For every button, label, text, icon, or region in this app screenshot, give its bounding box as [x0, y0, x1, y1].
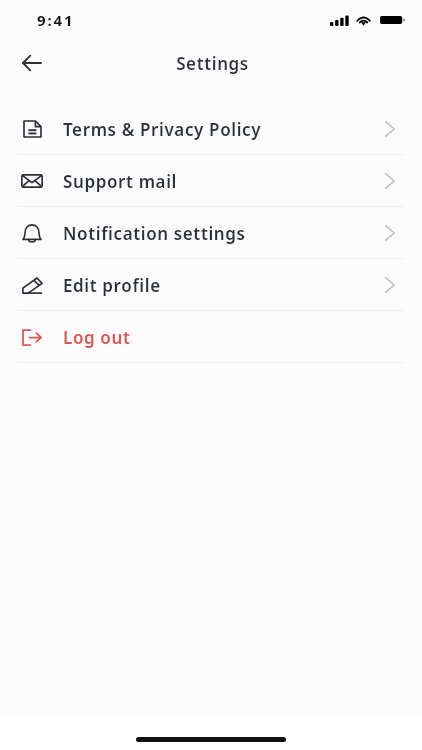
- staticText: Log out: [63, 326, 131, 349]
- staticText: Terms & Privacy Policy: [63, 118, 262, 141]
- staticText: Settings: [176, 52, 249, 75]
- button[interactable]: Notification settings: [0, 207, 422, 259]
- button[interactable]: Edit profile: [0, 259, 422, 311]
- button[interactable]: Back: [14, 45, 50, 81]
- staticText: Edit profile: [63, 274, 161, 297]
- button[interactable]: Log out: [0, 311, 422, 363]
- button[interactable]: Terms & Privacy Policy: [0, 103, 422, 155]
- staticText: 9:41: [37, 10, 75, 30]
- staticText: Support mail: [63, 170, 177, 193]
- staticText: Notification settings: [63, 222, 246, 245]
- button[interactable]: Support mail: [0, 155, 422, 207]
